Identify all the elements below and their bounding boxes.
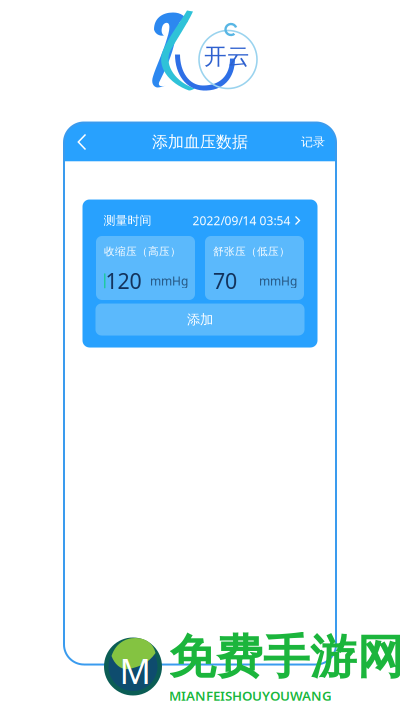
staticText: 舒张压（低压）	[213, 245, 290, 258]
staticText: 120	[105, 267, 141, 295]
button[interactable]: 记录	[301, 122, 336, 161]
staticText: 免费手游网	[169, 628, 400, 686]
button[interactable]: 添加	[95, 303, 304, 335]
staticText: 测量时间	[103, 213, 151, 228]
staticText: mmHg	[150, 273, 188, 289]
staticText: 添加血压数据	[152, 132, 248, 152]
staticText: M	[119, 647, 150, 693]
button[interactable]: Back	[64, 122, 97, 161]
staticText: mmHg	[259, 273, 297, 289]
staticText: 开云	[204, 43, 250, 70]
staticText: 添加	[187, 311, 213, 328]
staticText: 收缩压（高压）	[104, 245, 181, 258]
staticText: 70	[213, 267, 237, 295]
button[interactable]: 2022/09/14 03:54	[192, 212, 300, 228]
staticText: 记录	[301, 135, 325, 149]
staticText: MIANFEISHOUYOUWANG	[169, 687, 332, 704]
staticText: 2022/09/14 03:54	[192, 212, 290, 228]
